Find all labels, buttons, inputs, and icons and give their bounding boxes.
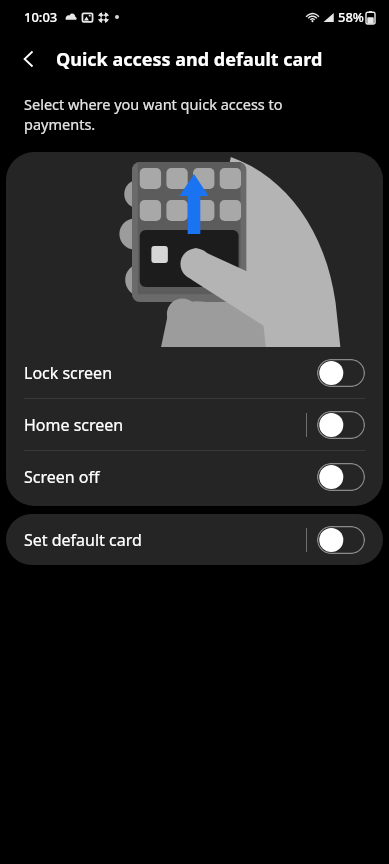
staticText: Screen off — [24, 466, 317, 488]
staticText: Set default card — [24, 529, 306, 551]
button[interactable]: Set default card — [6, 514, 383, 565]
button[interactable]: Toggle — [317, 526, 365, 554]
button[interactable]: Toggle — [317, 359, 365, 387]
staticText: 10:03 — [24, 8, 58, 26]
button[interactable]: Back — [9, 39, 49, 79]
button[interactable]: Lock screen — [6, 347, 383, 398]
staticText: Lock screen — [24, 362, 317, 384]
button[interactable]: Toggle — [317, 411, 365, 439]
staticText: Quick access and default card — [56, 47, 323, 72]
staticText: Home screen — [24, 414, 306, 436]
button[interactable]: Toggle — [317, 463, 365, 491]
button[interactable]: Home screen — [6, 399, 383, 450]
staticText: Select where you want quick access to pa… — [24, 94, 283, 135]
button[interactable]: Screen off — [6, 451, 383, 502]
staticText: 58% — [338, 8, 364, 26]
